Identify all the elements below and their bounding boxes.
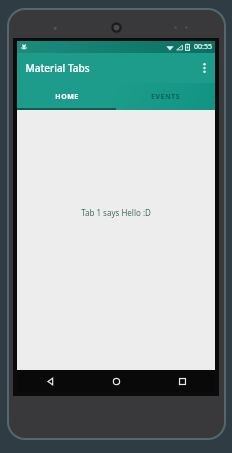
staticText: EVENTS (151, 92, 180, 102)
staticText: 00:55 (194, 42, 212, 52)
button[interactable]: Home (83, 370, 149, 392)
staticText: HOME (55, 92, 79, 102)
button[interactable]: Back (17, 370, 83, 392)
staticText: Tab 1 says Hello :D (81, 207, 151, 218)
button[interactable]: HOME (17, 83, 116, 110)
button[interactable]: EVENTS (116, 83, 215, 110)
button[interactable]: More options (193, 53, 215, 83)
button[interactable]: Recent apps (149, 370, 215, 392)
staticText: Material Tabs (25, 61, 90, 75)
